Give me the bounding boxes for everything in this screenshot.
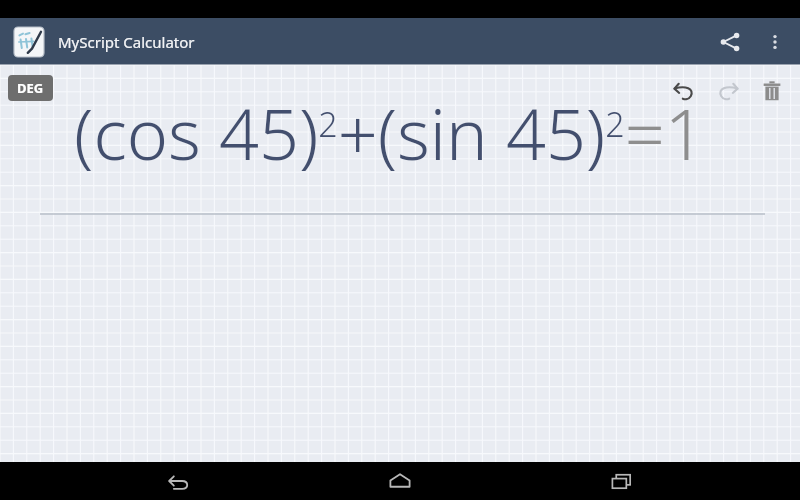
staticText: MyScript Calculator — [58, 32, 195, 52]
button[interactable]: Undo — [662, 69, 706, 113]
button[interactable]: Share — [706, 18, 754, 65]
button[interactable]: Home — [371, 462, 429, 500]
staticText: (cos 45)2+(sin 45)2=1 — [74, 85, 705, 180]
button[interactable]: DEG — [8, 75, 53, 101]
staticText: DEG — [17, 79, 44, 97]
button[interactable]: Redo — [706, 69, 750, 113]
button[interactable]: Back — [149, 462, 207, 500]
button[interactable]: Recent apps — [593, 462, 651, 500]
button[interactable]: Delete — [750, 69, 794, 113]
button[interactable]: More options — [754, 21, 796, 63]
